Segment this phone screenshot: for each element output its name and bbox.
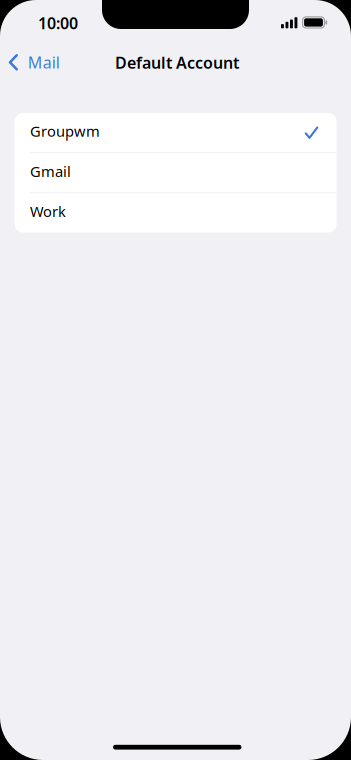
staticText: Groupwm: [30, 121, 100, 141]
staticText: Work: [30, 202, 66, 221]
button[interactable]: Work: [15, 193, 337, 232]
button[interactable]: Mail: [0, 42, 72, 82]
button[interactable]: Groupwm: [15, 113, 337, 152]
staticText: Mail: [28, 52, 60, 73]
staticText: 10:00: [38, 12, 78, 34]
button[interactable]: Gmail: [15, 153, 337, 192]
staticText: Default Account: [115, 52, 239, 73]
staticText: Gmail: [30, 161, 71, 181]
